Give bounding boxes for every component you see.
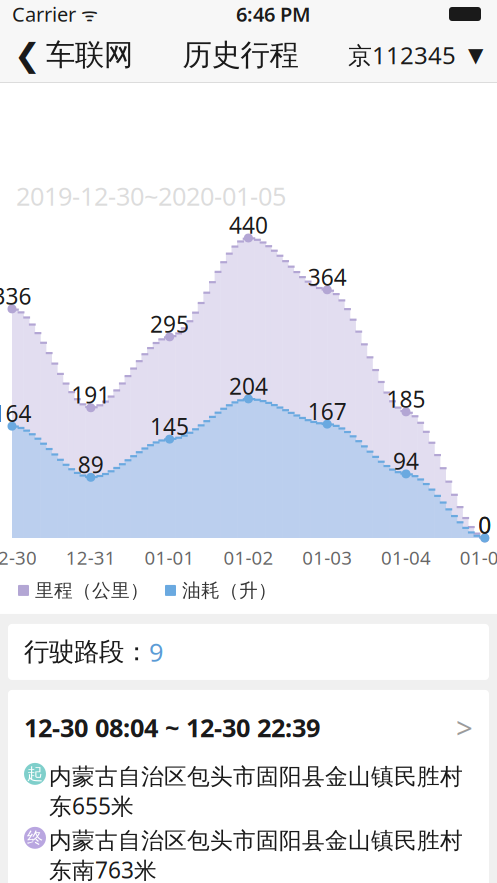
staticText: 京112345 bbox=[348, 39, 456, 71]
staticText: ❮ bbox=[14, 37, 41, 73]
staticText: 0 bbox=[478, 510, 491, 540]
staticText: 起 bbox=[27, 764, 43, 784]
staticText: 内蒙古自治区包头市固阳县金山镇民胜村东655米 bbox=[49, 763, 463, 821]
staticText: 295 bbox=[150, 309, 189, 339]
staticText: 94 bbox=[393, 446, 419, 476]
staticText: 01-03 bbox=[302, 545, 352, 570]
staticText: 车联网 bbox=[46, 37, 133, 73]
staticText: > bbox=[456, 708, 473, 747]
staticText: Carrier bbox=[12, 1, 76, 27]
staticText: 364 bbox=[308, 262, 347, 292]
staticText: 185 bbox=[386, 384, 425, 414]
staticText: 164 bbox=[0, 398, 31, 428]
staticText: 191 bbox=[71, 380, 110, 410]
staticText: 145 bbox=[150, 411, 189, 441]
staticText: 01-04 bbox=[381, 545, 431, 570]
staticText: 终 bbox=[27, 828, 43, 848]
staticText: 204 bbox=[229, 371, 268, 401]
staticText: 01-02 bbox=[223, 545, 273, 570]
staticText: 167 bbox=[308, 396, 347, 426]
button[interactable]: 京112345 bbox=[334, 31, 497, 79]
staticText: 12-31 bbox=[66, 545, 116, 570]
staticText: 12-30 bbox=[0, 545, 37, 570]
staticText: 9 bbox=[149, 635, 163, 669]
staticText: 01-01 bbox=[145, 545, 195, 570]
staticText: 336 bbox=[0, 281, 31, 311]
staticText: 历史行程 bbox=[182, 37, 298, 73]
staticText: 89 bbox=[78, 449, 104, 479]
staticText: 0 bbox=[478, 510, 491, 540]
staticText: ▼ bbox=[468, 44, 483, 66]
staticText: 440 bbox=[229, 210, 268, 240]
button[interactable]: 12-30 08:04 ~ 12-30 22:39 bbox=[8, 690, 489, 883]
staticText: ᯤ bbox=[76, 2, 98, 26]
button[interactable]: ❮ bbox=[0, 29, 147, 81]
staticText: 12-30 08:04 ~ 12-30 22:39 bbox=[24, 711, 320, 744]
staticText: 里程（公里） bbox=[35, 579, 149, 602]
staticText: 6:46 PM bbox=[236, 1, 311, 27]
staticText: 01-05 bbox=[460, 545, 497, 570]
staticText: 2019-12-30~2020-01-05 bbox=[16, 179, 286, 213]
staticText: 内蒙古自治区包头市固阳县金山镇民胜村东南763米 bbox=[49, 827, 463, 883]
staticText: 行驶路段： bbox=[24, 636, 149, 667]
staticText: 油耗（升） bbox=[182, 579, 277, 602]
